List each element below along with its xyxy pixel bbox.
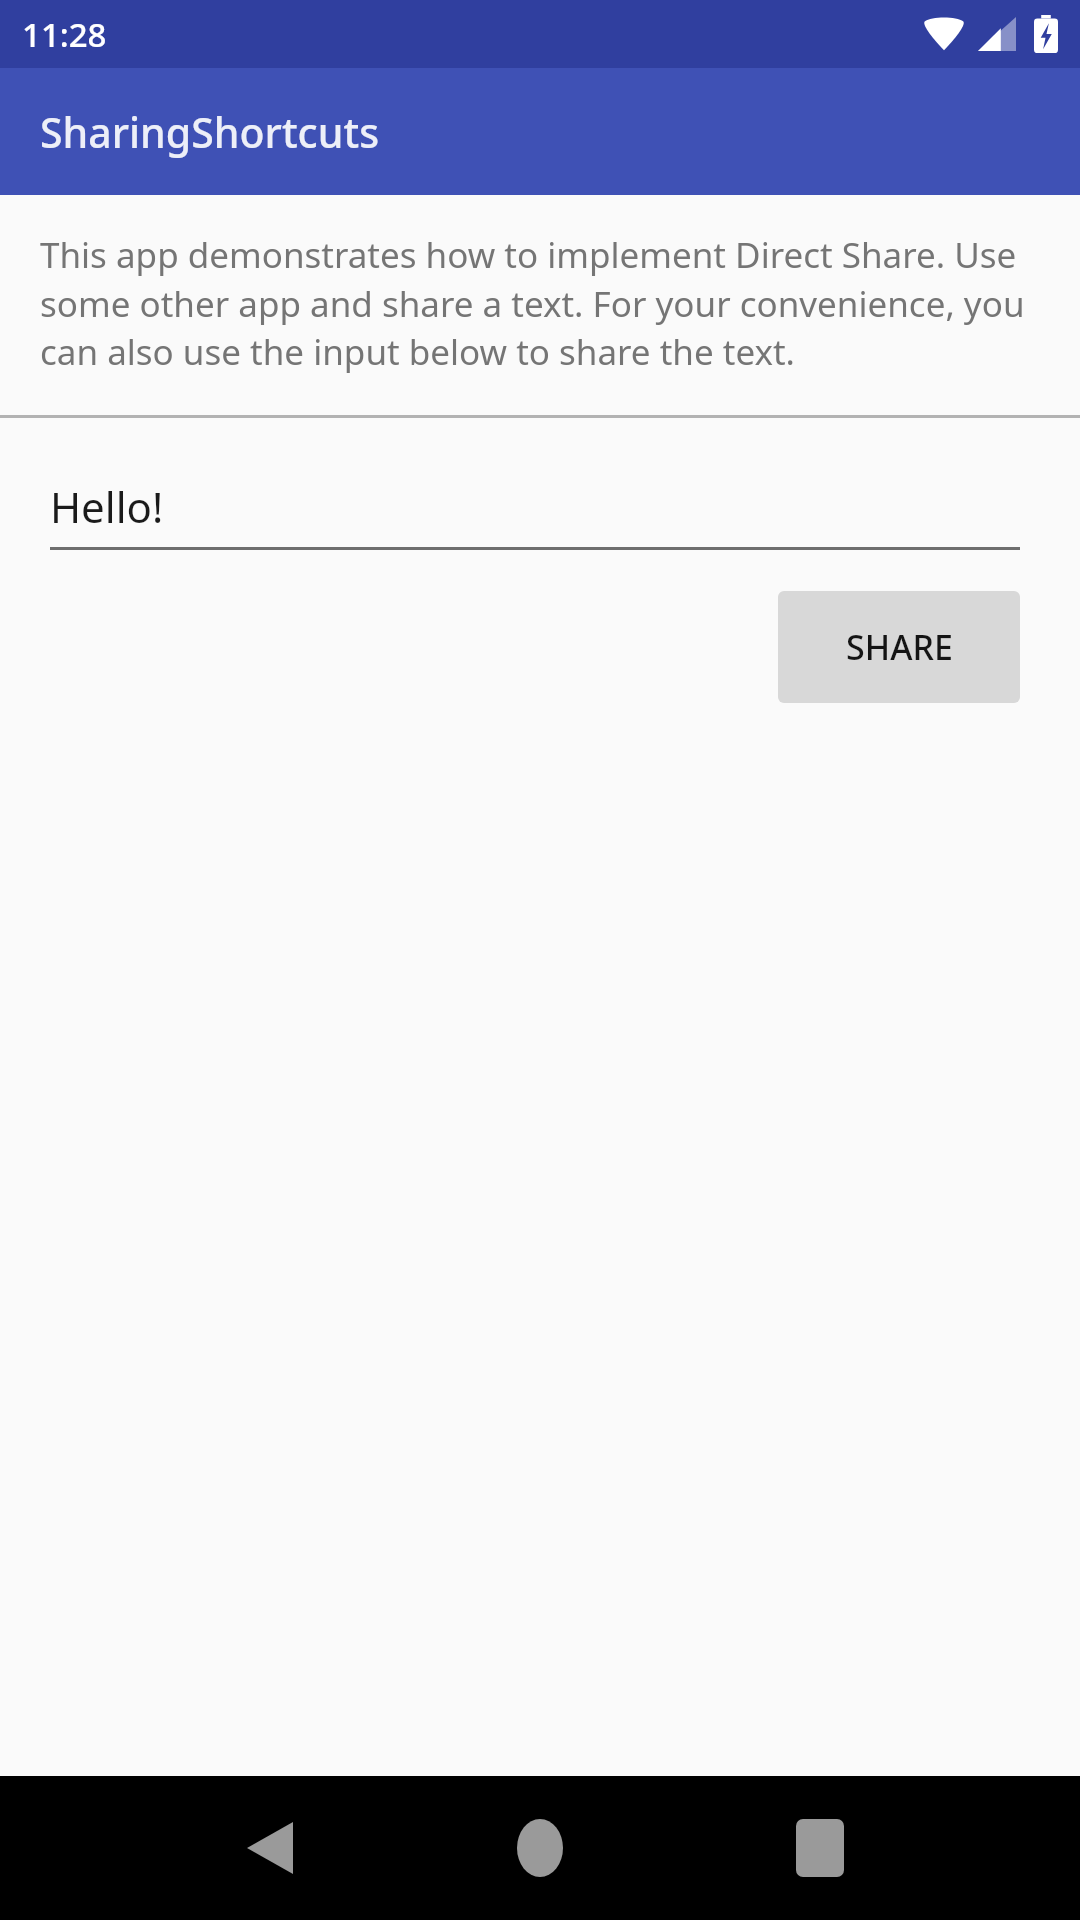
staticText: 11:28 (22, 12, 107, 57)
button[interactable]: Recent apps (772, 1800, 868, 1896)
button[interactable]: Back (222, 1800, 318, 1896)
button[interactable]: SHARE (778, 591, 1020, 703)
staticText: SHARE (846, 624, 953, 670)
staticText: Hello! (50, 478, 164, 535)
button[interactable]: Home (492, 1800, 588, 1896)
button[interactable]: Hello! (50, 478, 1020, 550)
staticText: This app demonstrates how to implement D… (40, 231, 1044, 375)
staticText: SharingShortcuts (40, 104, 380, 160)
